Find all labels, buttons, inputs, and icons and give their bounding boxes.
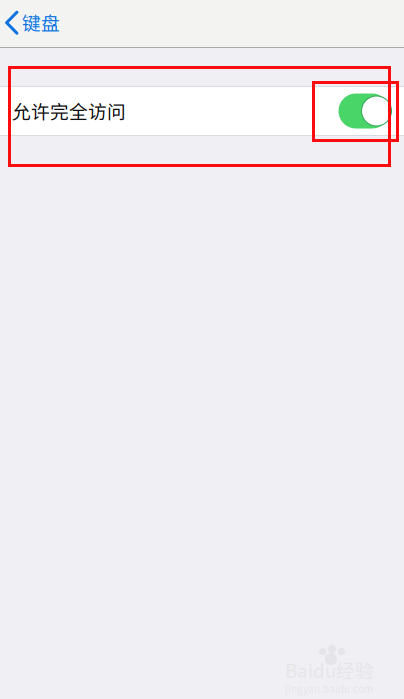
button[interactable]: 允许完全访问 xyxy=(338,93,390,128)
staticText: 键盘 xyxy=(22,8,60,35)
button[interactable]: 键盘 xyxy=(0,0,72,47)
staticText: Baidu经验 xyxy=(285,656,374,683)
staticText: 允许完全访问 xyxy=(12,97,126,124)
